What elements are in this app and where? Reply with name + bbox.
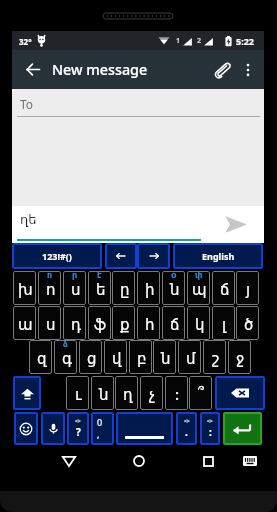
button[interactable]: Zero [91, 412, 114, 445]
button[interactable]: ճ [212, 271, 235, 305]
staticText: մ [186, 350, 196, 367]
button[interactable]: Attach file [207, 50, 237, 89]
button[interactable]: ձ [54, 340, 77, 374]
button[interactable]: ա [13, 306, 36, 340]
staticText: ա [18, 316, 33, 333]
staticText: 0 [97, 416, 103, 428]
button[interactable]: ց [79, 340, 102, 374]
staticText: ջ [236, 350, 245, 367]
staticText: բ [137, 350, 147, 367]
button[interactable]: ն [91, 376, 114, 410]
button[interactable]: զ [29, 340, 52, 374]
staticText: <> [75, 418, 81, 425]
staticText: English [202, 250, 235, 262]
staticText: յ [246, 281, 251, 298]
button[interactable]: Enter [223, 412, 262, 445]
button[interactable]: Voice input [41, 412, 65, 445]
staticText: : [175, 384, 180, 404]
staticText: չ [149, 386, 156, 403]
button[interactable]: ղ [115, 376, 138, 410]
button[interactable]: Backspace [215, 376, 265, 410]
staticText: ի [145, 281, 155, 298]
button[interactable]: չ [140, 376, 163, 410]
staticText: 5:22 [236, 35, 254, 47]
button[interactable]: ջ [228, 340, 251, 374]
staticText: ց [87, 350, 97, 367]
staticText: վ [112, 350, 122, 367]
button[interactable]: ս [38, 306, 61, 340]
staticText: գ [62, 350, 72, 367]
button[interactable]: շ [203, 340, 226, 374]
button[interactable]: լ [212, 306, 235, 340]
button[interactable]: 123!#() [12, 243, 102, 269]
staticText: ? [76, 425, 81, 439]
staticText: ւ [75, 386, 82, 403]
button[interactable]: վ [104, 340, 127, 374]
button[interactable]: Back [56, 446, 82, 476]
button[interactable]: ւ [66, 376, 89, 410]
staticText: <> [207, 418, 213, 425]
button[interactable]: Recent apps [195, 446, 221, 476]
staticText: ն [161, 350, 171, 367]
staticText: ո [47, 271, 53, 280]
button[interactable]: Send [212, 206, 260, 243]
button[interactable]: Emoji [14, 412, 38, 445]
staticText: New message [52, 60, 148, 79]
button[interactable]: ծ [236, 306, 259, 340]
button[interactable]: English [173, 243, 263, 269]
button[interactable]: ք [112, 306, 135, 340]
button[interactable]: Symbols [67, 412, 89, 445]
button[interactable]: ը [112, 271, 135, 305]
button[interactable]: ի [137, 271, 160, 305]
button[interactable]: ո [38, 271, 61, 305]
button[interactable]: դ [63, 306, 86, 340]
button[interactable]: : [165, 376, 188, 410]
button[interactable]: յ [236, 271, 259, 305]
staticText: խ [18, 281, 33, 298]
staticText: To [20, 96, 34, 112]
staticText: փ [195, 271, 203, 280]
staticText: հ [145, 316, 155, 333]
staticText: ֆ [94, 316, 107, 333]
button[interactable]: To [12, 89, 264, 118]
button[interactable]: փ [187, 271, 210, 305]
button[interactable]: հ [137, 306, 160, 340]
staticText: ք [120, 316, 130, 333]
staticText: , [97, 428, 100, 440]
button[interactable]: բ [129, 340, 152, 374]
button[interactable]: ր [63, 271, 86, 305]
button[interactable]: Previous [105, 243, 137, 269]
staticText: 1 [176, 36, 181, 46]
staticText: ս [46, 316, 56, 333]
staticText: ՞ [198, 386, 205, 403]
button[interactable]: Colon [200, 412, 220, 445]
staticText: կ [195, 316, 205, 333]
button[interactable]: Period [176, 412, 197, 445]
button[interactable]: խ [13, 271, 36, 305]
staticText: ե [96, 281, 106, 298]
button[interactable]: Home [126, 446, 152, 476]
button[interactable]: Space [116, 412, 173, 445]
staticText: ը [120, 281, 130, 298]
button[interactable]: Shift [13, 376, 41, 410]
button[interactable]: Next [137, 243, 170, 269]
button[interactable]: է [88, 271, 111, 305]
staticText: : [209, 425, 212, 439]
button[interactable]: օ [162, 271, 185, 305]
staticText: ս [71, 281, 81, 298]
button[interactable]: Back [19, 50, 46, 89]
button[interactable]: ճ [162, 306, 185, 340]
staticText: ձ [63, 340, 68, 349]
button[interactable]: More options [237, 50, 259, 89]
button[interactable]: ՞ [189, 376, 212, 410]
staticText: 123!#() [42, 250, 72, 262]
button[interactable]: ֆ [88, 306, 111, 340]
button[interactable]: կ [187, 306, 210, 340]
staticText: ճ [170, 316, 180, 333]
button[interactable]: Switch keyboard [237, 446, 263, 476]
staticText: ր [72, 271, 78, 280]
button[interactable]: մ [178, 340, 201, 374]
button[interactable]: ն [153, 340, 176, 374]
staticText: . [185, 425, 188, 439]
staticText: <> [184, 418, 190, 425]
